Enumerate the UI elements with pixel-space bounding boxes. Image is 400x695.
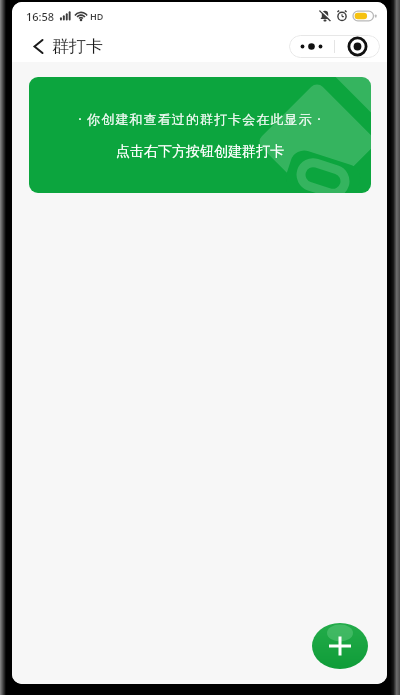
staticText: 16:58 <box>26 9 55 24</box>
button[interactable] <box>312 623 368 669</box>
button[interactable] <box>33 39 44 54</box>
button[interactable]: · 你创建和查看过的群打卡会在此显示 · <box>29 77 371 193</box>
button[interactable] <box>335 35 380 58</box>
button[interactable] <box>289 35 334 58</box>
staticText: · 你创建和查看过的群打卡会在此显示 · <box>78 110 322 128</box>
staticText: 群打卡 <box>52 36 103 57</box>
staticText: 点击右下方按钮创建群打卡 <box>116 143 284 161</box>
staticText: HD <box>90 10 104 22</box>
